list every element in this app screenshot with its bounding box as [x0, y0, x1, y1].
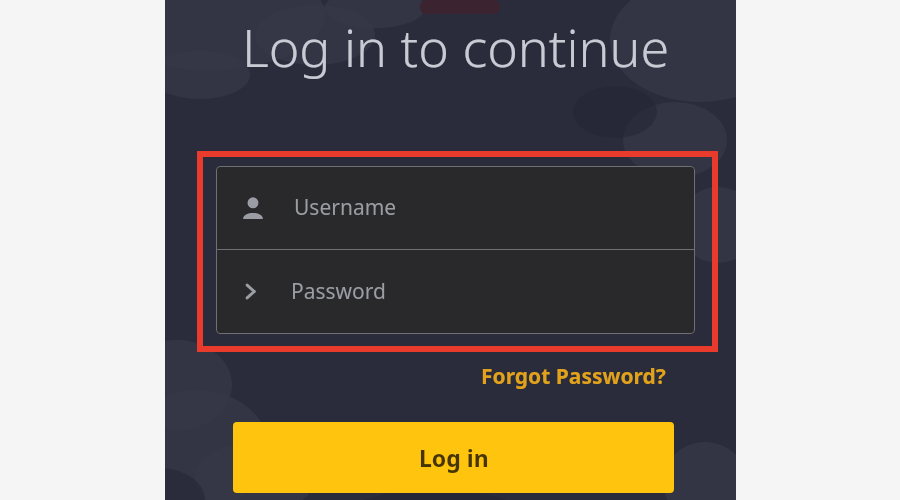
staticText: Log in — [419, 442, 489, 473]
staticText: Username — [294, 193, 397, 222]
button[interactable]: Password — [216, 250, 695, 333]
staticText: Password — [291, 277, 386, 306]
button[interactable]: Log in — [233, 422, 674, 493]
staticText: Log in to continue — [170, 11, 736, 82]
staticText: Forgot Password? — [481, 362, 666, 391]
button[interactable]: Forgot Password? — [481, 362, 666, 391]
button[interactable]: Username — [216, 166, 695, 249]
